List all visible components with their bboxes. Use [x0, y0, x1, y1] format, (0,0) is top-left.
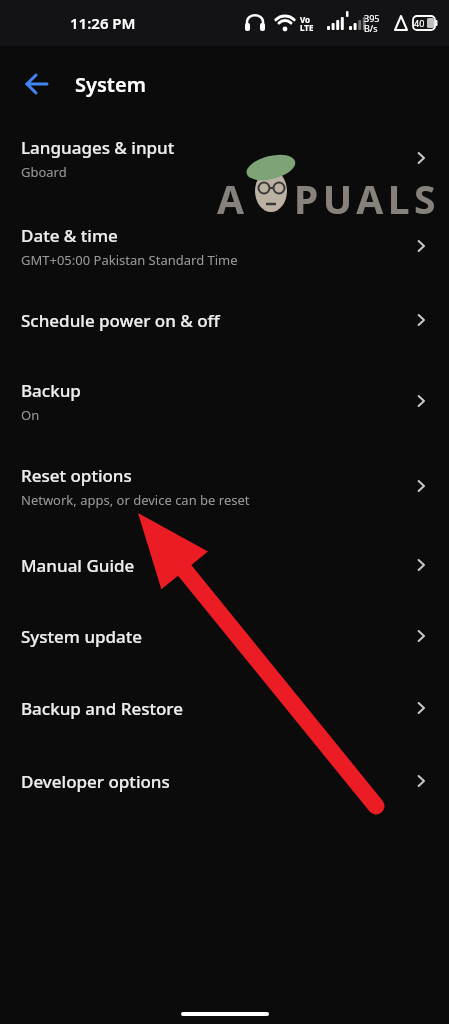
button[interactable]: Manual Guide — [0, 541, 449, 589]
staticText: Backup — [21, 379, 81, 402]
button[interactable]: Languages & input — [0, 123, 449, 193]
staticText: 395 B/s — [364, 12, 380, 34]
staticText: Reset options — [21, 464, 132, 487]
button[interactable]: Backup — [0, 366, 449, 436]
staticText: System — [75, 71, 146, 98]
button[interactable]: Reset options — [0, 451, 449, 521]
staticText: PUALS — [294, 172, 441, 225]
button[interactable]: Backup and Restore — [0, 684, 449, 732]
staticText: Gboard — [21, 163, 67, 181]
staticText: A — [217, 172, 244, 225]
staticText: GMT+05:00 Pakistan Standard Time — [21, 251, 238, 269]
staticText: Languages & input — [21, 136, 175, 159]
staticText: 11:26 PM — [70, 13, 136, 33]
staticText: 40 — [414, 17, 425, 29]
button[interactable]: System update — [0, 612, 449, 660]
button[interactable] — [20, 67, 54, 101]
staticText: Manual Guide — [21, 554, 135, 577]
button[interactable]: Schedule power on & off — [0, 296, 449, 344]
staticText: System update — [21, 625, 143, 648]
staticText: Developer options — [21, 770, 170, 793]
staticText: On — [21, 406, 40, 424]
staticText: Date & time — [21, 224, 118, 247]
staticText: Vo LTE — [300, 14, 314, 33]
button[interactable]: Date & time — [0, 211, 449, 281]
staticText: Schedule power on & off — [21, 309, 220, 332]
staticText: Network, apps, or device can be reset — [21, 491, 250, 509]
staticText: Backup and Restore — [21, 697, 183, 720]
button[interactable]: Developer options — [0, 757, 449, 805]
